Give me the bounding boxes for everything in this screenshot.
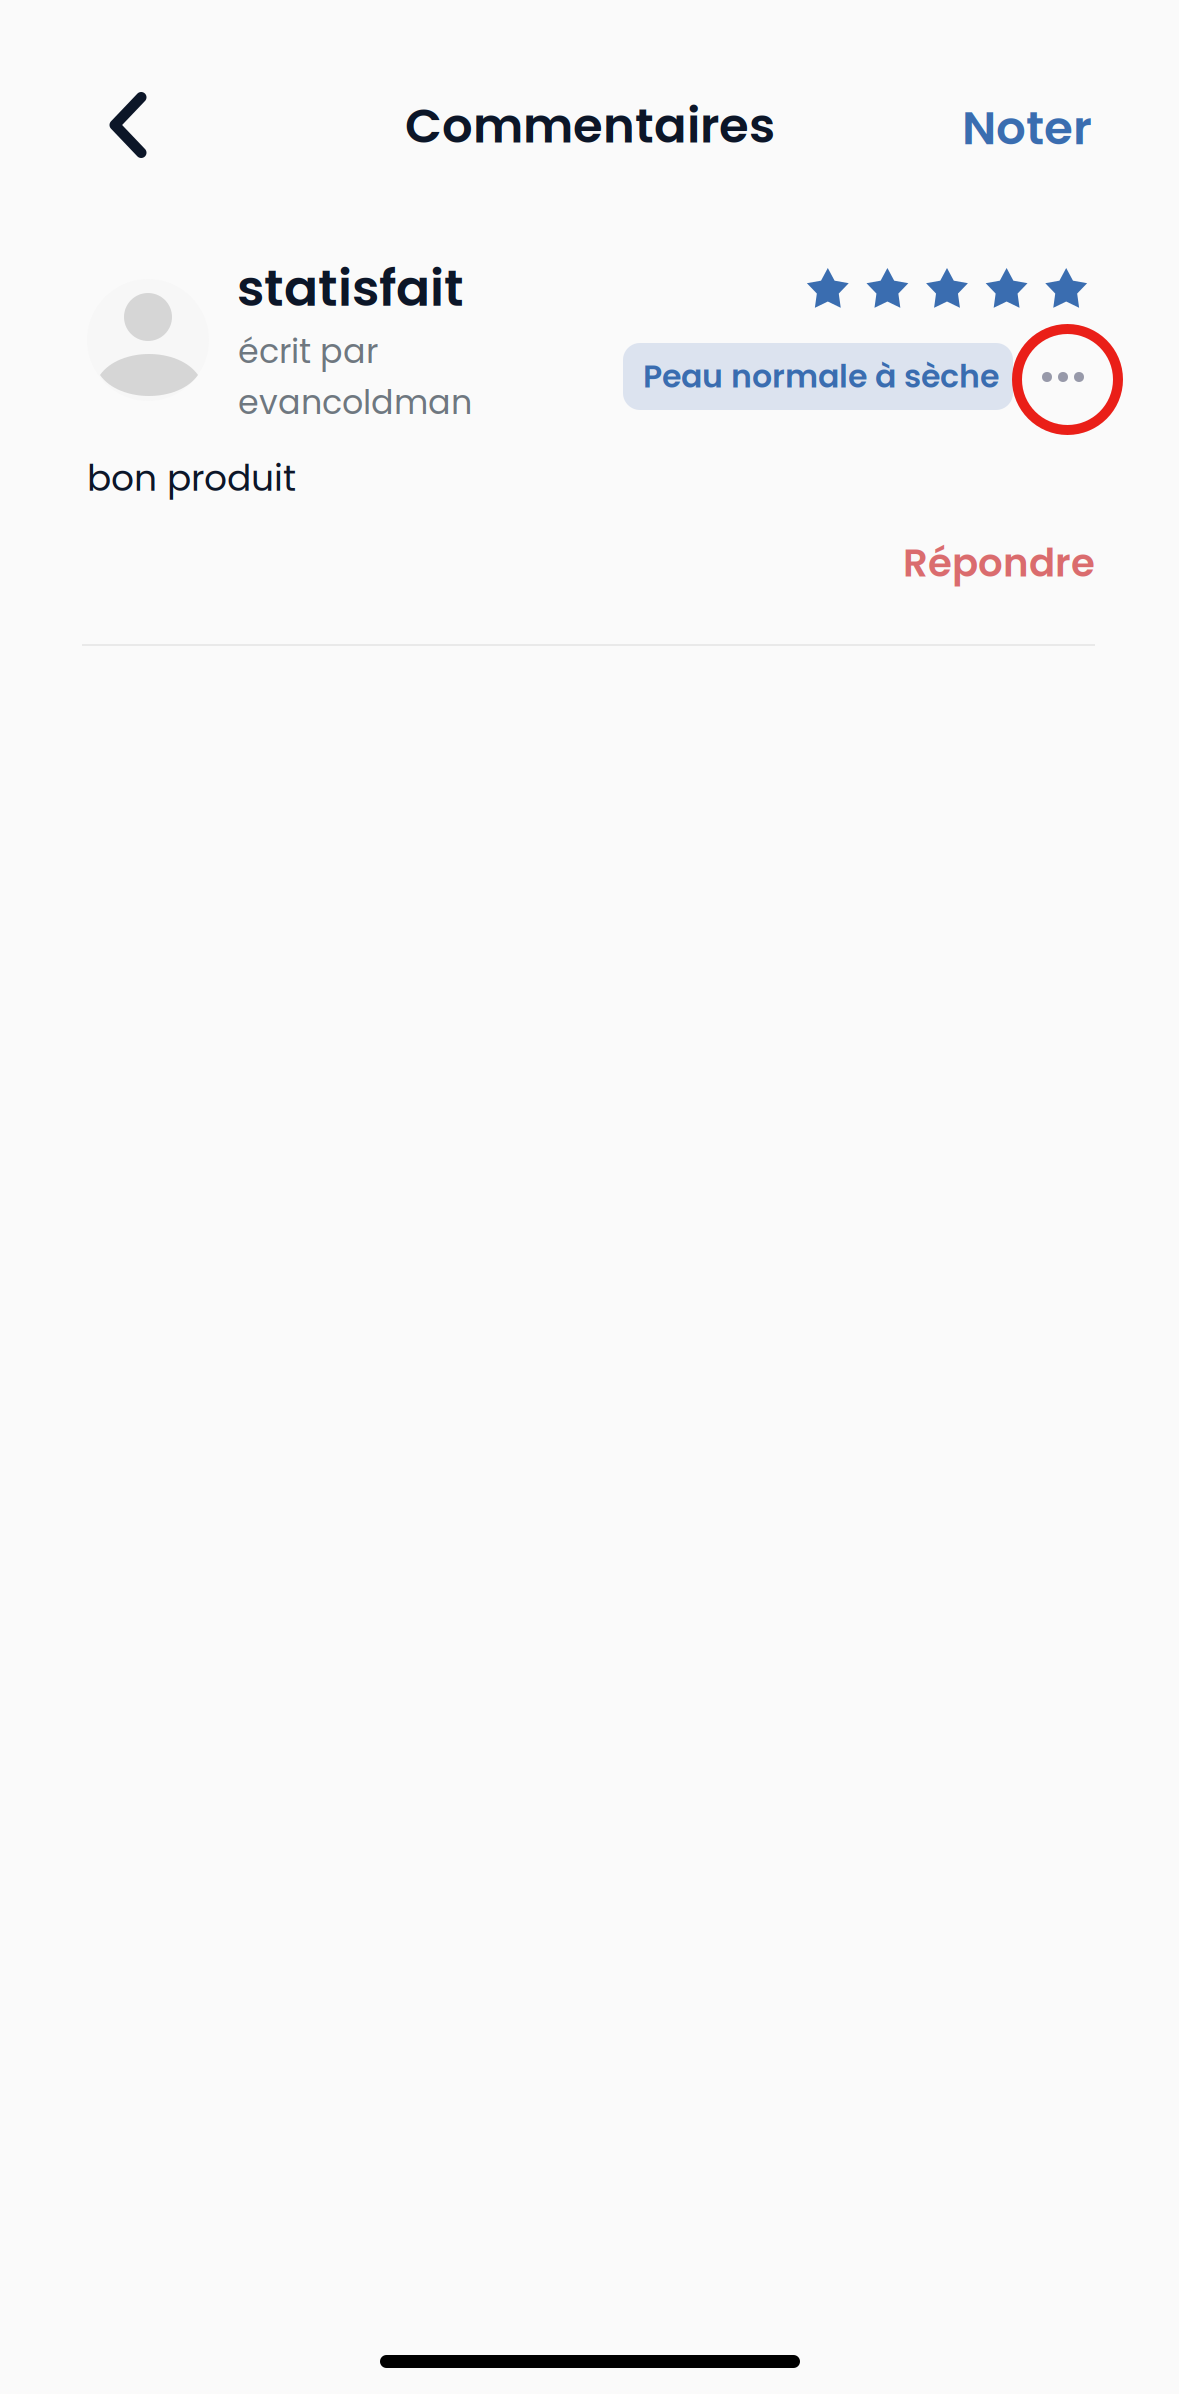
staticText: evancoldman xyxy=(238,379,472,426)
button[interactable]: Noter xyxy=(932,83,1092,173)
staticText: Noter xyxy=(962,95,1092,161)
staticText: écrit par xyxy=(238,328,378,375)
button[interactable]: Répondre xyxy=(895,528,1095,598)
staticText: Peau normale à sèche xyxy=(643,354,999,399)
button[interactable]: Back xyxy=(78,75,178,175)
staticText: bon produit xyxy=(87,453,296,503)
staticText: statisfait xyxy=(237,253,464,323)
staticText: Commentaires xyxy=(405,92,775,159)
button[interactable]: Peau normale à sèche xyxy=(623,343,1013,410)
button[interactable]: More options xyxy=(1011,325,1115,429)
staticText: Répondre xyxy=(903,536,1095,590)
